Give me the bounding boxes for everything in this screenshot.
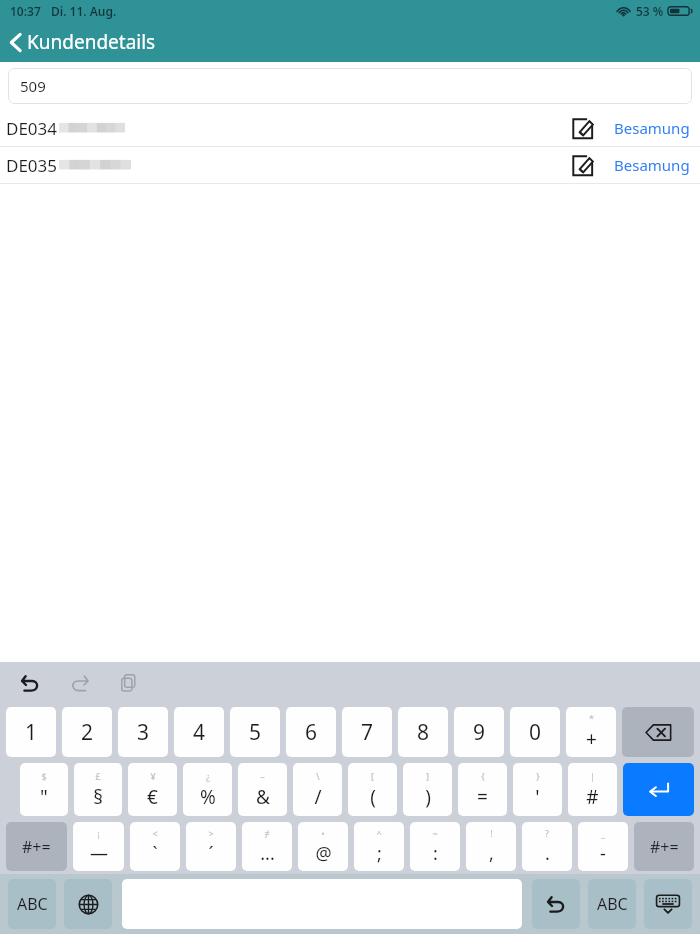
staticText: — [90,841,108,866]
button[interactable]: ≠ [242,822,292,871]
staticText: 6 [305,718,318,747]
staticText: / [314,784,322,810]
staticText: # [586,784,599,810]
button[interactable]: – [238,763,287,816]
staticText: " [40,784,48,810]
button[interactable]: _ [578,822,628,871]
staticText: € [147,784,158,810]
button[interactable]: Löschen [622,707,694,757]
button[interactable]: ] [403,763,452,816]
button[interactable]: 4 [174,707,224,757]
staticText: 509 [20,76,46,96]
button[interactable]: 0 [510,707,560,757]
staticText: ≠ [264,827,270,839]
button[interactable]: DE035 [0,147,700,184]
staticText: @ [315,841,332,866]
button[interactable]: Wiederholen [66,669,94,697]
button[interactable]: Bearbeiten [567,113,598,144]
button[interactable]: * [566,707,616,757]
staticText: DE034 [6,117,58,140]
button[interactable]: ABC [8,879,56,929]
staticText: 3 [137,718,150,747]
staticText: ! [490,827,493,839]
staticText: 7 [361,718,374,747]
staticText: ABC [17,893,48,915]
staticText: & [256,784,270,810]
button[interactable]: Eingabe [623,763,694,816]
button[interactable]: Bearbeiten [567,150,598,181]
staticText: < [152,827,158,839]
staticText: ¥ [150,770,156,782]
staticText: % [200,784,216,810]
staticText: + [586,726,597,752]
button[interactable]: 6 [286,707,336,757]
button[interactable]: Tastatur ausblenden [644,879,692,929]
button[interactable]: ^ [354,822,404,871]
staticText: DE035 [6,154,58,177]
staticText: ; [377,841,382,866]
staticText: 5 [249,718,262,747]
button[interactable]: Besamung [612,151,692,179]
button[interactable]: ? [522,822,572,871]
button[interactable]: Rückgängig [532,879,580,929]
button[interactable]: £ [74,763,122,816]
button[interactable]: $ [20,763,68,816]
button[interactable]: } [513,763,562,816]
staticText: 10:37 [10,3,41,19]
staticText: 8 [417,718,430,747]
staticText: ¿ [206,770,210,782]
button[interactable]: 8 [398,707,448,757]
staticText: ´ [208,841,214,866]
button[interactable]: | [568,763,617,816]
button[interactable]: { [458,763,507,816]
button[interactable]: 5 [230,707,280,757]
staticText: * [589,712,594,724]
button[interactable]: ¿ [183,763,232,816]
staticText: : [433,841,438,866]
staticText: $ [41,770,47,782]
button[interactable]: 3 [118,707,168,757]
button[interactable]: 7 [342,707,392,757]
button[interactable]: Rückgängig [16,669,44,697]
button[interactable]: #+= [634,822,694,871]
button[interactable]: > [186,822,236,871]
staticText: 1 [25,718,38,747]
button[interactable]: DE034 [0,110,700,147]
staticText: 53 % [636,3,664,19]
button[interactable]: ¥ [128,763,177,816]
button[interactable]: ~ [410,822,460,871]
staticText: 4 [193,718,206,747]
button[interactable]: \ [293,763,342,816]
button[interactable]: • [298,822,348,871]
staticText: - [600,841,606,866]
button[interactable]: Besamung [612,114,692,142]
staticText: #+= [650,836,679,858]
staticText: 2 [81,718,94,747]
staticText: } [536,770,540,782]
button[interactable]: 1 [6,707,56,757]
button[interactable]: Sprache wechseln [64,879,112,929]
button[interactable]: < [130,822,180,871]
staticText: _ [601,827,605,839]
button[interactable]: 509 [8,68,692,104]
staticText: Di. 11. Aug. [51,3,117,19]
button[interactable]: Kundendetails [0,25,168,59]
button[interactable]: #+= [6,822,67,871]
button[interactable]: 2 [62,707,112,757]
staticText: ^ [376,827,382,839]
button[interactable]: 9 [454,707,504,757]
staticText: , [489,841,494,866]
button[interactable]: ¡ [73,822,124,871]
staticText: = [477,784,488,810]
button[interactable]: ABC [588,879,636,929]
staticText: ( [370,784,376,810]
staticText: | [590,770,595,782]
staticText: ` [152,841,158,866]
button[interactable]: ! [466,822,516,871]
staticText: { [481,770,485,782]
staticText: 0 [529,718,542,747]
staticText: ] [426,770,429,782]
button[interactable]: Einfügen [116,670,142,696]
button[interactable]: [ [348,763,397,816]
